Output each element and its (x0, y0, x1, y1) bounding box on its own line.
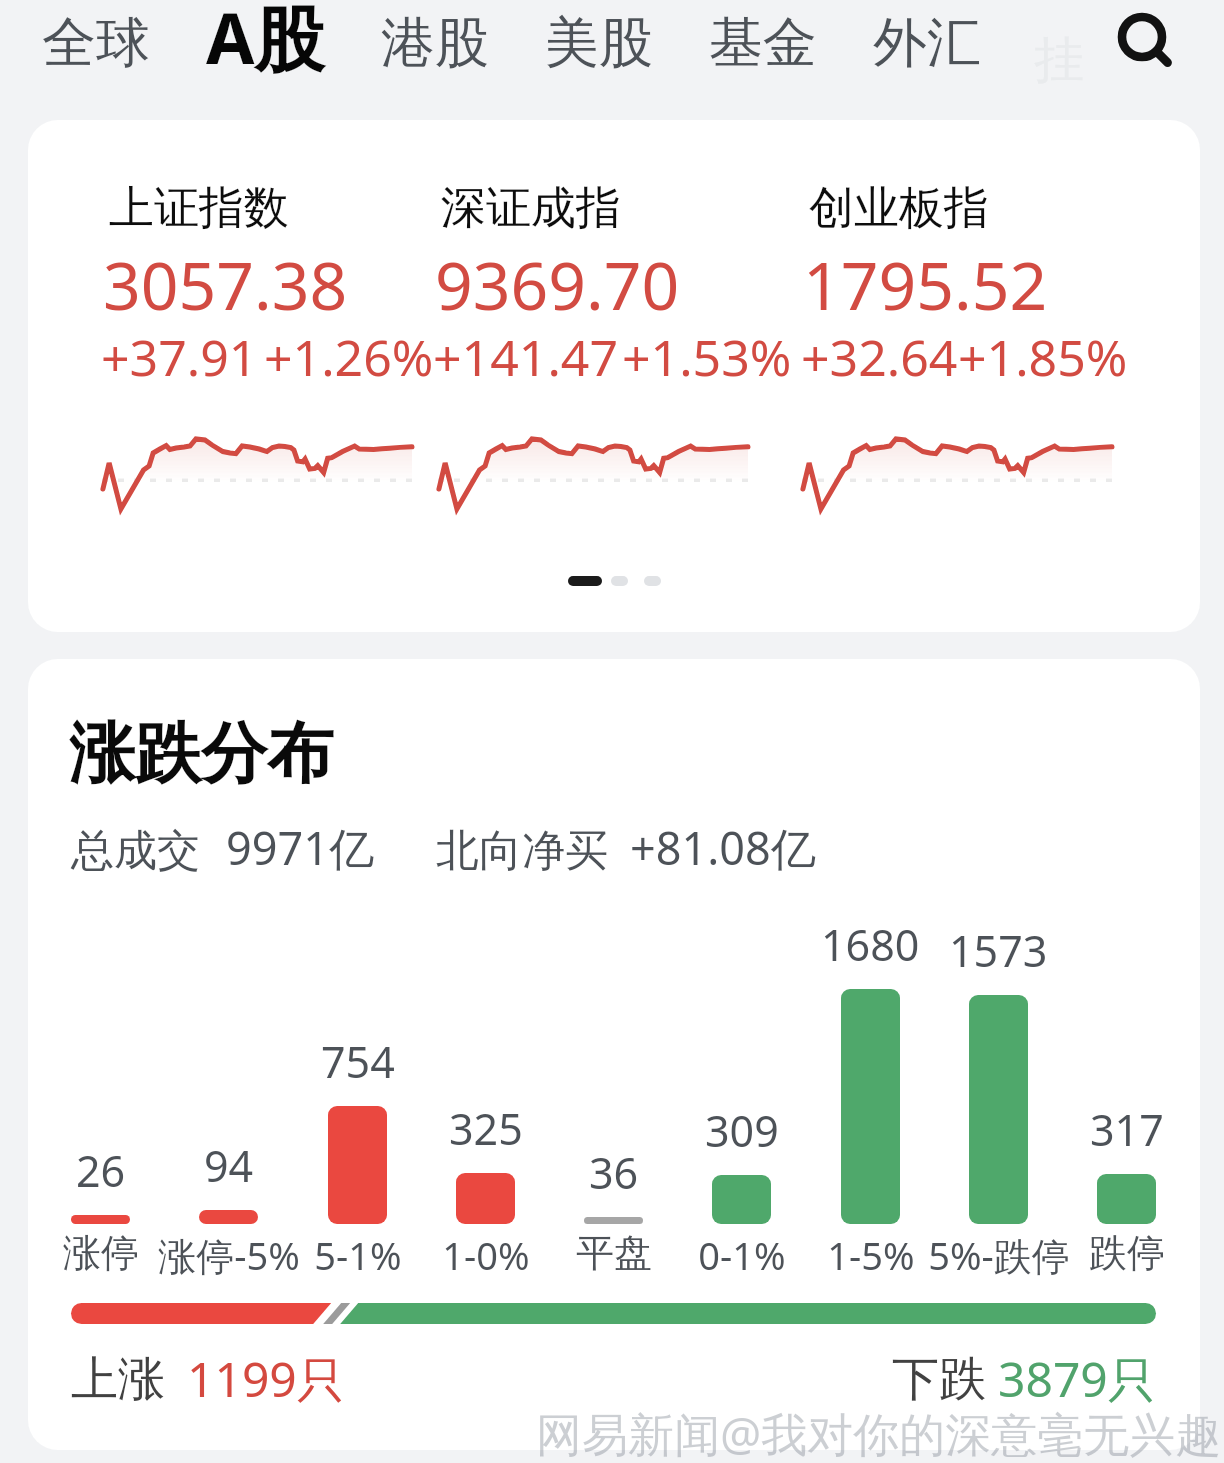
staticText: 1-0% (442, 1229, 530, 1281)
staticText: 317 (1090, 1100, 1164, 1159)
staticText: 94 (204, 1136, 254, 1195)
button[interactable]: 美股 (517, 0, 681, 120)
staticText: 全球 (42, 9, 150, 77)
button[interactable]: 涨跌分布 (28, 659, 1200, 1450)
staticText: 美股 (545, 9, 653, 77)
button[interactable]: Search (1110, 0, 1186, 120)
staticText: +1.26% (264, 323, 433, 391)
staticText: 5%-跌停 (928, 1229, 1070, 1281)
button[interactable]: 外汇 (845, 0, 1009, 120)
staticText: 基金 (709, 9, 817, 77)
staticText: +32.64 (801, 323, 958, 391)
button[interactable]: 全球 (14, 0, 178, 120)
staticText: 上证指数 (109, 180, 289, 237)
staticText: 36 (589, 1143, 639, 1202)
staticText: 1795.52 (803, 239, 1048, 329)
staticText: 5-1% (314, 1229, 402, 1281)
staticText: 0-1% (698, 1229, 786, 1281)
staticText: +141.47 (433, 323, 618, 391)
staticText: 平盘 (576, 1229, 652, 1277)
staticText: 涨停-5% (158, 1229, 300, 1281)
staticText: 1199只 (187, 1346, 345, 1412)
staticText: 创业板指 (809, 180, 989, 237)
staticText: 北向净买 (436, 824, 608, 878)
staticText: 3879只 (998, 1346, 1156, 1412)
staticText: +81.08亿 (630, 817, 816, 878)
button[interactable]: 基金 (681, 0, 845, 120)
staticText: 3057.38 (103, 239, 348, 329)
staticText: 跌停 (1089, 1229, 1165, 1277)
staticText: 754 (321, 1032, 395, 1091)
staticText: 9369.70 (435, 239, 680, 329)
staticText: 1680 (821, 915, 920, 974)
staticText: 总成交 (71, 824, 200, 878)
staticText: 9971亿 (226, 817, 374, 878)
staticText: A股 (206, 0, 325, 85)
staticText: 309 (705, 1101, 779, 1160)
staticText: 1573 (949, 921, 1048, 980)
staticText: 涨停 (63, 1229, 139, 1277)
button[interactable]: 港股 (353, 0, 517, 120)
staticText: 26 (76, 1141, 126, 1200)
button[interactable]: A股 (178, 0, 353, 120)
staticText: +1.85% (958, 323, 1128, 391)
staticText: 下跌 (892, 1350, 986, 1409)
staticText: 港股 (381, 9, 489, 77)
staticText: 1-5% (827, 1229, 915, 1281)
staticText: 325 (449, 1099, 523, 1158)
staticText: 挂 (1034, 29, 1084, 92)
staticText: +1.53% (622, 323, 792, 391)
staticText: +37.91 (101, 323, 258, 391)
staticText: 涨跌分布 (69, 712, 333, 795)
button[interactable]: 上证指数 (28, 120, 1200, 632)
staticText: 深证成指 (441, 180, 621, 237)
staticText: 上涨 (71, 1350, 165, 1409)
staticText: 外汇 (873, 9, 981, 77)
staticText: 网易新闻@我对你的深意毫无兴趣 (536, 1402, 1222, 1463)
